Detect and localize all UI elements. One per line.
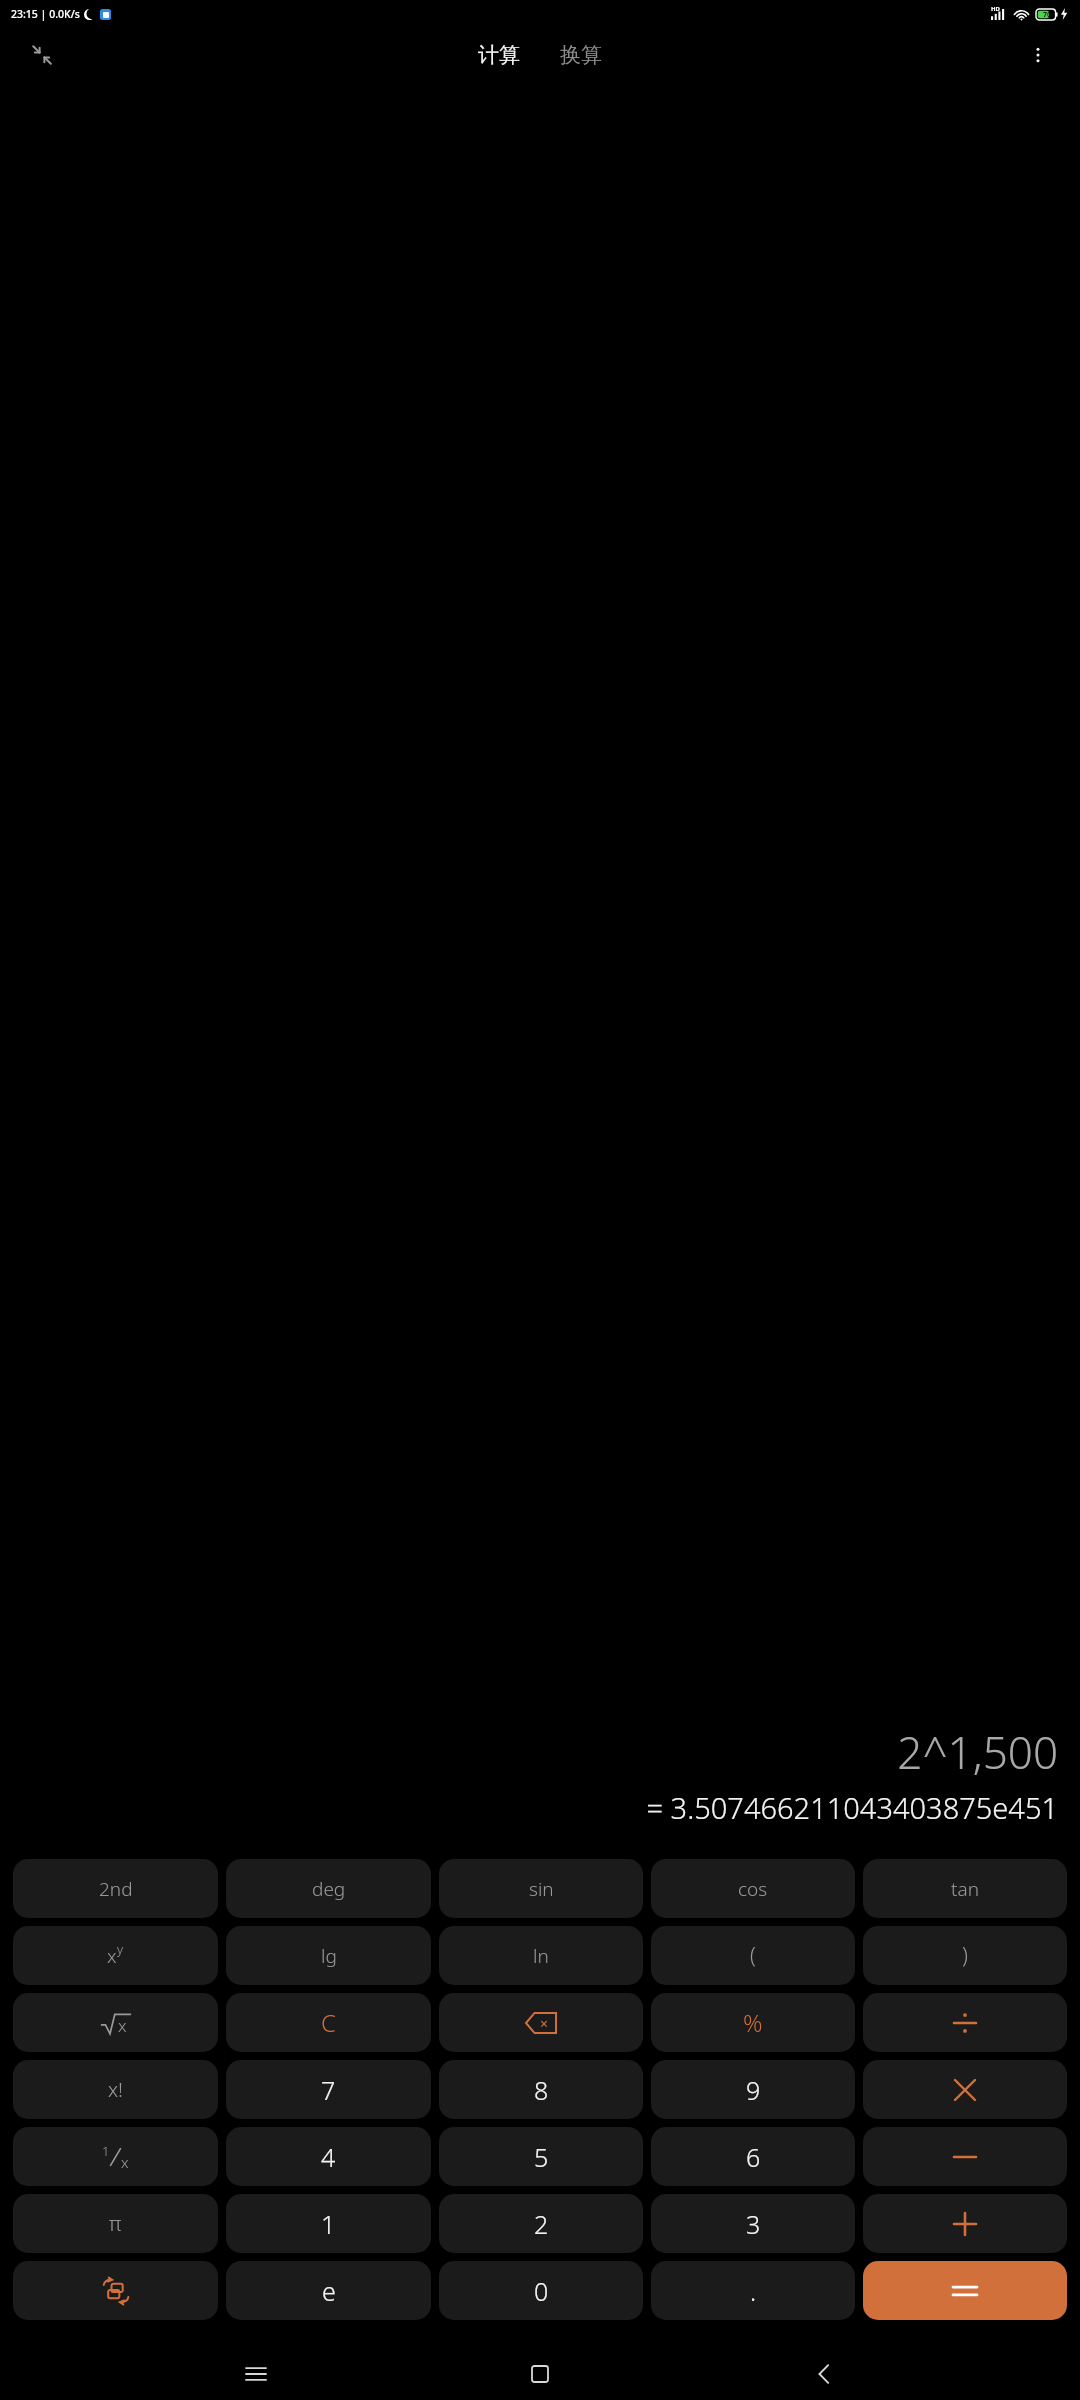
staticText: 计算 (478, 42, 520, 68)
button[interactable]: 8 (439, 2060, 643, 2119)
button[interactable]: sin (439, 1859, 643, 1918)
button[interactable]: 6 (651, 2127, 855, 2186)
button[interactable]: 5 (439, 2127, 643, 2186)
staticText: ln (533, 1943, 549, 1969)
staticText: 1 (102, 2142, 110, 2160)
staticText: e (322, 2274, 336, 2308)
button[interactable]: deg (226, 1859, 431, 1918)
button[interactable]: % (651, 1993, 855, 2052)
staticText: 2^1,500 (897, 1722, 1058, 1782)
button[interactable]: Equals (863, 2261, 1067, 2320)
staticText: 0 (534, 2274, 549, 2308)
staticText: 3 (746, 2207, 761, 2241)
button[interactable]: Divide (863, 1993, 1067, 2052)
button[interactable]: 1 (226, 2194, 431, 2253)
button[interactable]: Plus (863, 2194, 1067, 2253)
button[interactable]: 7 (226, 2060, 431, 2119)
staticText: 换算 (560, 42, 602, 68)
staticText: 7 (321, 2073, 336, 2107)
staticText: 6 (746, 2140, 761, 2174)
button[interactable]: 0 (439, 2261, 643, 2320)
staticText: HD (991, 5, 1000, 13)
button[interactable]: π (13, 2194, 218, 2253)
button[interactable]: . (651, 2261, 855, 2320)
staticText: 8 (534, 2073, 549, 2107)
button[interactable]: ) (863, 1926, 1067, 1985)
staticText: tan (951, 1876, 979, 1902)
button[interactable]: 1 (13, 2127, 218, 2186)
staticText: x (121, 2152, 129, 2172)
button[interactable]: lg (226, 1926, 431, 1985)
staticText: lg (321, 1943, 337, 1969)
staticText: % (743, 2006, 763, 2039)
staticText: 2 (534, 2207, 549, 2241)
button[interactable]: x (13, 1926, 218, 1985)
staticText: . (750, 2274, 757, 2308)
staticText: cos (738, 1876, 768, 1902)
button[interactable]: Recent apps (228, 2348, 284, 2400)
staticText: 1 (321, 2207, 336, 2241)
staticText: × (540, 2014, 549, 2033)
button[interactable]: x! (13, 2060, 218, 2119)
button[interactable]: Backspace (439, 1993, 643, 2052)
button[interactable]: ( (651, 1926, 855, 1985)
staticText: ) (962, 1941, 968, 1970)
button[interactable]: Collapse (20, 33, 64, 77)
staticText: x (118, 2014, 127, 2037)
button[interactable]: 2 (439, 2194, 643, 2253)
staticText: 4 (321, 2140, 336, 2174)
button[interactable]: ln (439, 1926, 643, 1985)
button[interactable]: Multiply (863, 2060, 1067, 2119)
button[interactable]: Home (512, 2348, 568, 2400)
staticText: π (109, 2210, 122, 2237)
button[interactable]: 换算 (550, 36, 612, 74)
staticText: ( (750, 1941, 756, 1970)
button[interactable]: tan (863, 1859, 1067, 1918)
staticText: = 3.507466211043403875e451 (646, 1788, 1058, 1827)
button[interactable]: 计算 (468, 36, 530, 74)
staticText: sin (529, 1876, 554, 1902)
staticText: 2nd (99, 1876, 133, 1902)
button[interactable]: Back (796, 2348, 852, 2400)
button[interactable]: cos (651, 1859, 855, 1918)
button[interactable]: x (13, 1993, 218, 2052)
staticText: 5 (534, 2140, 549, 2174)
button[interactable]: Convert (13, 2261, 218, 2320)
button[interactable]: C (226, 1993, 431, 2052)
button[interactable]: Minus (863, 2127, 1067, 2186)
button[interactable]: e (226, 2261, 431, 2320)
staticText: y (117, 1940, 124, 1958)
staticText: deg (312, 1876, 346, 1902)
staticText: C (321, 2006, 336, 2039)
staticText: 9 (746, 2073, 761, 2107)
button[interactable]: 3 (651, 2194, 855, 2253)
staticText: x! (108, 2076, 123, 2103)
button[interactable]: More options (1016, 33, 1060, 77)
staticText: 23:15 | 0.0K/s (11, 7, 80, 21)
button[interactable]: 2nd (13, 1859, 218, 1918)
staticText: 70 (1043, 10, 1052, 20)
staticText: x (107, 1943, 117, 1969)
button[interactable]: 9 (651, 2060, 855, 2119)
button[interactable]: 4 (226, 2127, 431, 2186)
